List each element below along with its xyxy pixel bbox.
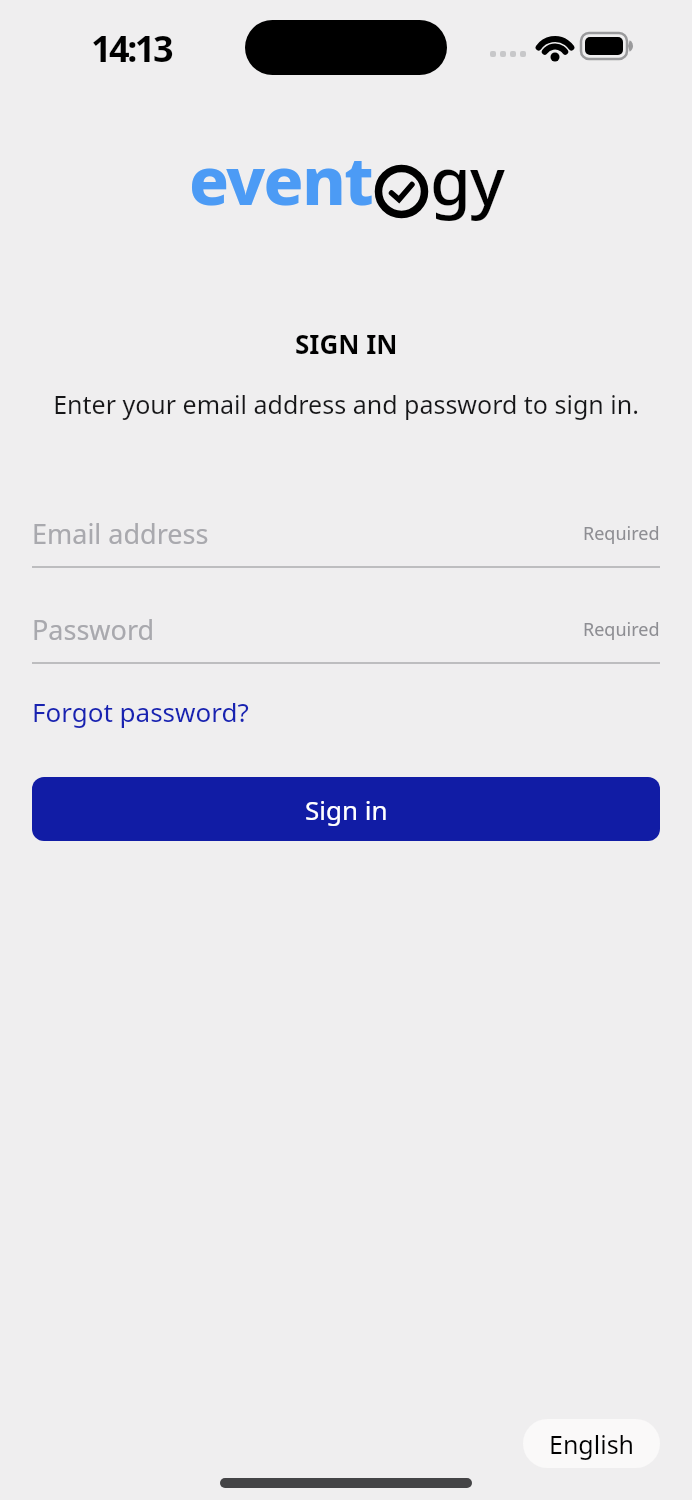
button[interactable]: Forgot password? xyxy=(32,694,249,729)
staticText: event xyxy=(189,134,373,224)
staticText: Sign in xyxy=(305,792,388,827)
staticText: Password xyxy=(32,611,155,648)
button[interactable]: Email address xyxy=(32,515,660,568)
button[interactable]: English xyxy=(523,1419,660,1468)
button[interactable]: Password xyxy=(32,611,660,664)
staticText: gy xyxy=(430,134,504,224)
staticText: Email address xyxy=(32,515,209,552)
staticText: SIGN IN xyxy=(295,326,398,361)
staticText: Required xyxy=(583,521,660,546)
staticText: Enter your email address and password to… xyxy=(53,387,639,421)
button[interactable]: Sign in xyxy=(32,777,660,841)
staticText: 14:13 xyxy=(91,24,171,73)
staticText: Required xyxy=(583,617,660,642)
staticText: English xyxy=(549,1427,635,1461)
